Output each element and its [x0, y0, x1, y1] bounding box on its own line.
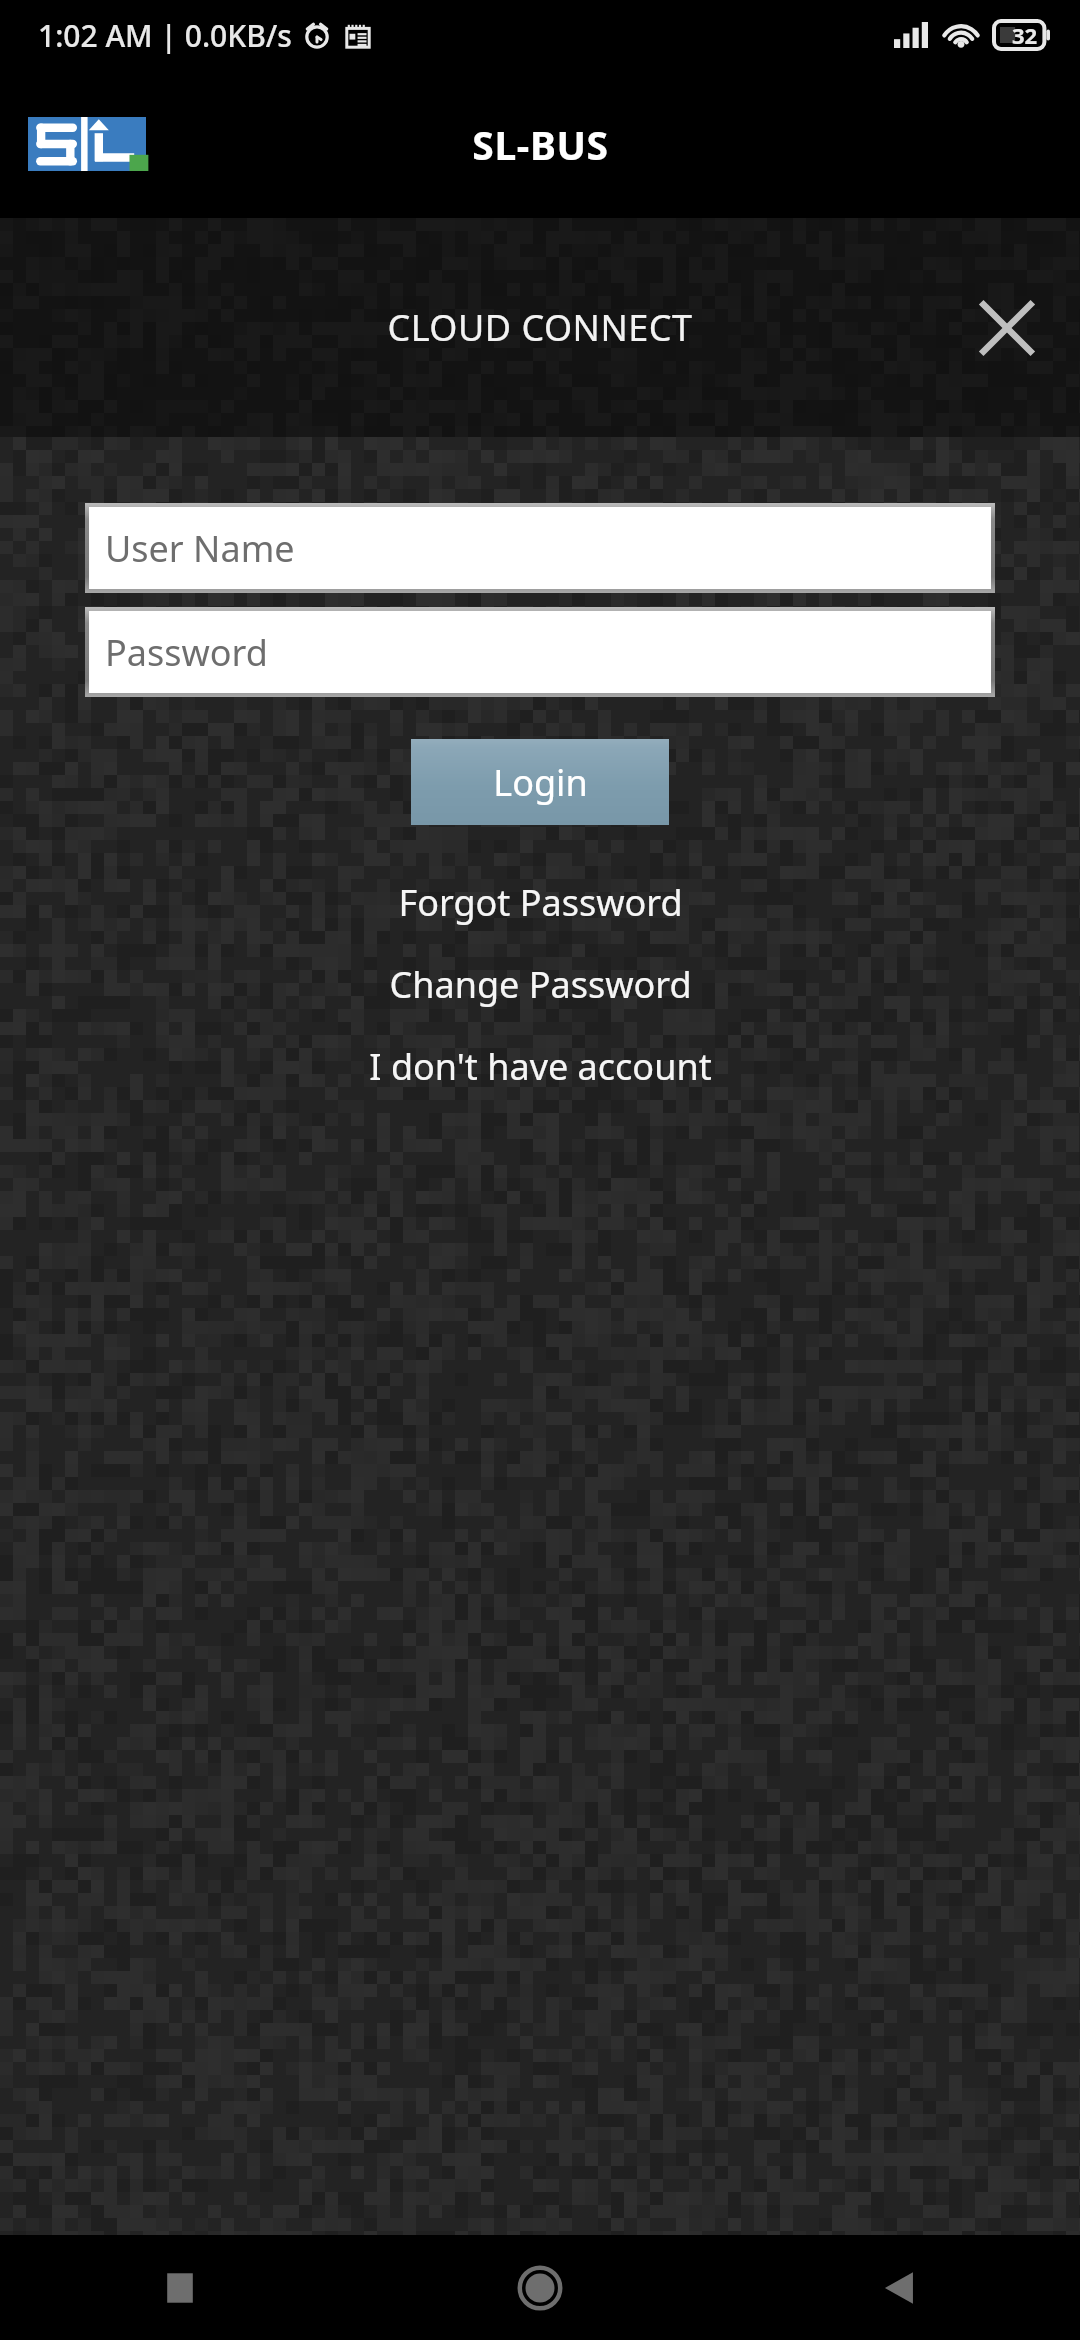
- staticText: Forgot Password: [398, 878, 683, 927]
- button[interactable]: Recent apps: [0, 2235, 360, 2340]
- staticText: Password: [105, 628, 268, 677]
- button[interactable]: User Name: [89, 507, 991, 589]
- button[interactable]: [28, 117, 146, 171]
- button[interactable]: Home: [360, 2235, 720, 2340]
- staticText: SL-BUS: [472, 118, 609, 171]
- staticText: Change Password: [389, 960, 692, 1009]
- staticText: CLOUD CONNECT: [387, 303, 693, 352]
- button[interactable]: Close: [970, 291, 1044, 365]
- staticText: I don't have account: [369, 1042, 712, 1091]
- button[interactable]: I don't have account: [0, 1025, 1080, 1107]
- button[interactable]: Login: [411, 739, 669, 825]
- button[interactable]: Change Password: [0, 943, 1080, 1025]
- button[interactable]: Password: [89, 611, 991, 693]
- staticText: User Name: [105, 524, 295, 573]
- button[interactable]: Forgot Password: [0, 861, 1080, 943]
- staticText: 1:02 AM | 0.0KB/s: [38, 15, 292, 56]
- button[interactable]: Back: [720, 2235, 1080, 2340]
- staticText: 32: [1012, 20, 1038, 50]
- staticText: Login: [493, 758, 588, 807]
